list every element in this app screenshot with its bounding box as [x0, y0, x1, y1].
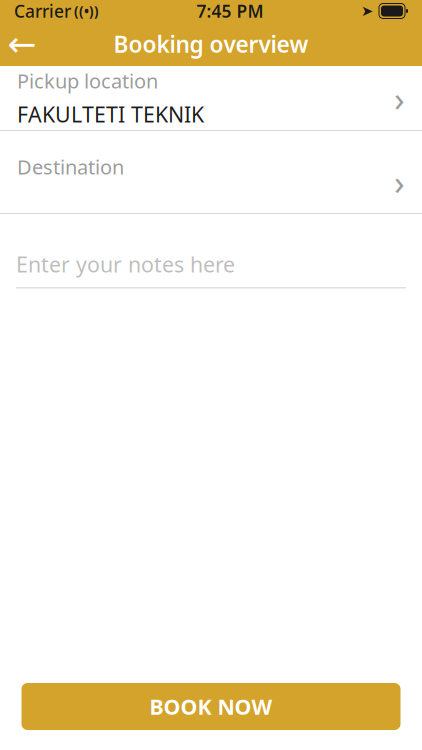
button[interactable]: BOOK NOW — [21, 683, 400, 730]
staticText: Carrier — [14, 0, 71, 22]
staticText: ➤ — [361, 3, 373, 19]
staticText: Pickup location — [17, 68, 158, 94]
staticText: › — [394, 158, 405, 204]
button[interactable]: Back — [0, 22, 44, 66]
button[interactable]: Pickup location — [0, 66, 422, 130]
staticText: ((•)) — [71, 2, 99, 20]
staticText: › — [394, 75, 405, 121]
staticText: BOOK NOW — [149, 692, 272, 721]
button[interactable]: Destination — [0, 131, 422, 213]
staticText: Destination — [17, 153, 124, 180]
staticText: Booking overview — [113, 29, 308, 59]
staticText: FAKULTETI TEKNIK — [17, 100, 204, 128]
staticText: ← — [7, 24, 36, 64]
staticText: Enter your notes here — [16, 250, 235, 278]
staticText: 7:45 PM — [196, 0, 263, 22]
